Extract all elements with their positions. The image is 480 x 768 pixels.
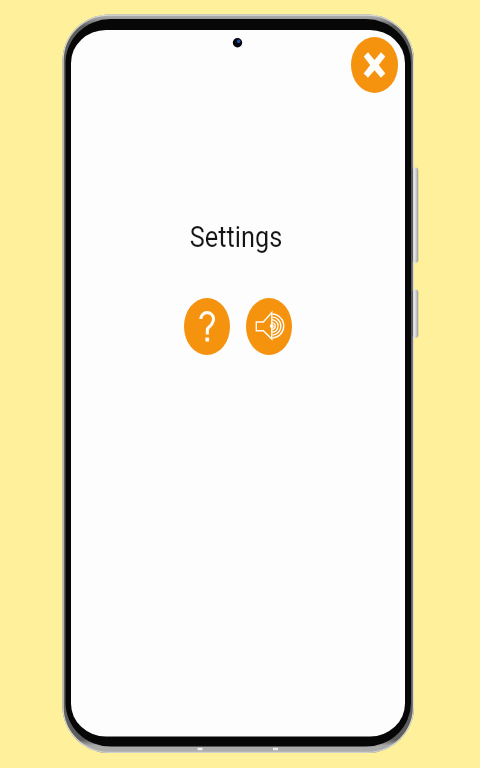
- button[interactable]: Sound: [246, 298, 292, 355]
- button[interactable]: Help: [184, 298, 230, 355]
- staticText: Settings: [95, 219, 377, 263]
- button[interactable]: Close: [351, 37, 398, 93]
